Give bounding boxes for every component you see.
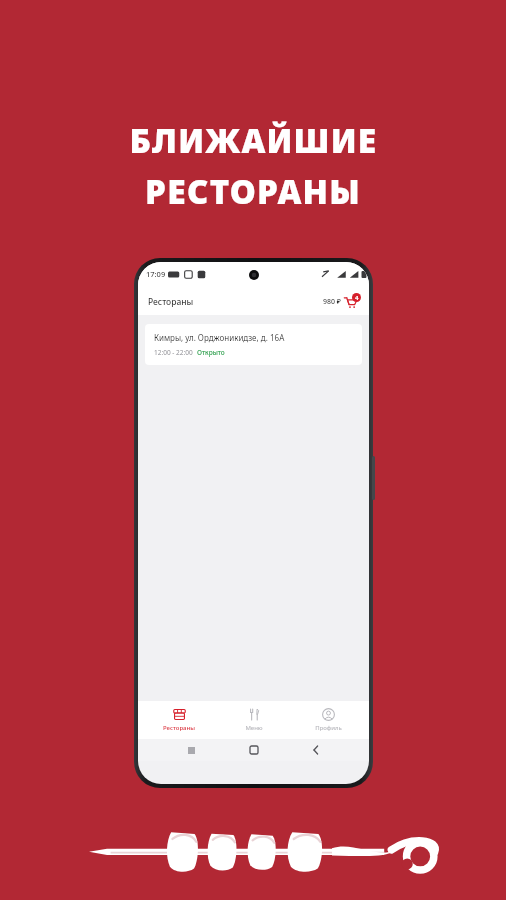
button[interactable]: Профиль <box>295 705 361 735</box>
staticText: Рестораны <box>148 296 194 308</box>
staticText: Кимры, ул. Орджоникидзе, д. 16А <box>154 332 285 343</box>
staticText: Открыто <box>197 348 225 357</box>
staticText: Профиль <box>315 724 342 732</box>
staticText: РЕСТОРАНЫ <box>145 169 361 214</box>
button[interactable]: Home <box>245 741 263 759</box>
button[interactable]: Рестораны <box>146 705 212 735</box>
button[interactable]: Кимры, ул. Орджоникидзе, д. 16А <box>145 324 362 365</box>
button[interactable]: Меню <box>221 705 287 735</box>
staticText: БЛИЖАЙШИЕ <box>129 118 378 163</box>
button[interactable]: Back <box>307 741 325 759</box>
staticText: Рестораны <box>163 724 195 732</box>
staticText: 980 ₽ <box>323 297 341 307</box>
button[interactable]: Recents <box>182 741 200 759</box>
staticText: 4 <box>355 294 359 302</box>
staticText: Меню <box>245 724 263 732</box>
button[interactable]: Корзина <box>323 293 361 310</box>
staticText: 17:09 <box>146 269 166 279</box>
staticText: 12:00 - 22:00 <box>154 348 193 357</box>
